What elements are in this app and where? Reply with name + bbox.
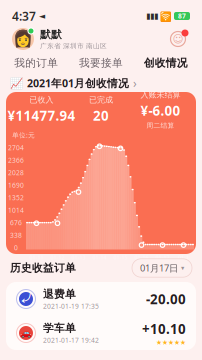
staticText: 周二结算 bbox=[146, 121, 174, 130]
staticText: 338 bbox=[10, 231, 22, 240]
staticText: 已收入 bbox=[29, 95, 53, 105]
button[interactable]: 📈 bbox=[0, 74, 202, 92]
staticText: ▾ bbox=[181, 264, 184, 272]
staticText: 学车单 bbox=[43, 321, 76, 335]
staticText: -20.00 bbox=[146, 290, 186, 308]
staticText: 2021年01月创收情况 bbox=[27, 76, 129, 90]
staticText: 📈 bbox=[10, 77, 23, 89]
button[interactable]: 🚗 bbox=[6, 316, 196, 350]
button[interactable]: 创收情况 bbox=[133, 52, 198, 74]
button[interactable]: 01月17日 bbox=[132, 259, 192, 277]
staticText: 2021-01-17 19:42 bbox=[43, 336, 99, 344]
staticText: › bbox=[133, 75, 137, 91]
staticText: 🛜 bbox=[158, 10, 174, 22]
button[interactable]: Messages bbox=[166, 27, 190, 51]
button[interactable]: 我的订单 bbox=[4, 52, 69, 74]
staticText: 🚗 bbox=[20, 328, 32, 338]
staticText: ⤶ bbox=[20, 294, 31, 304]
staticText: ▮▮▮ bbox=[146, 11, 158, 21]
staticText: 1014 bbox=[8, 206, 24, 215]
staticText: ◄ bbox=[36, 11, 45, 21]
staticText: 默默 bbox=[40, 28, 62, 41]
staticText: +10.10 bbox=[142, 320, 186, 338]
staticText: 0 bbox=[14, 243, 18, 252]
staticText: ¥-6.00 bbox=[140, 102, 180, 119]
staticText: 2366 bbox=[8, 156, 24, 165]
staticText: 已完成 bbox=[89, 95, 113, 105]
staticText: 2704 bbox=[8, 143, 24, 152]
staticText: 退费单 bbox=[43, 287, 76, 301]
button[interactable]: 我要接单 bbox=[69, 52, 133, 74]
staticText: 1352 bbox=[8, 193, 24, 202]
button[interactable]: ⤶ bbox=[6, 282, 196, 316]
staticText: 01-1 bbox=[178, 254, 189, 261]
staticText: 👩 bbox=[13, 30, 33, 48]
staticText: 676 bbox=[10, 218, 22, 227]
staticText: 历史收益订单 bbox=[10, 261, 76, 274]
staticText: ¥11477.94 bbox=[7, 107, 75, 124]
staticText: 2028 bbox=[8, 168, 24, 177]
staticText: ☺ bbox=[172, 33, 183, 45]
staticText: 单位:元 bbox=[12, 131, 35, 139]
staticText: 4:37 bbox=[12, 8, 36, 24]
staticText: 20 bbox=[93, 107, 109, 124]
staticText: 01-17 bbox=[155, 254, 169, 261]
staticText: 2021-01-19 17:35 bbox=[43, 302, 99, 310]
staticText: ★★★★★ bbox=[156, 339, 186, 346]
staticText: 入账未结算 bbox=[140, 90, 180, 100]
staticText: 01-16 bbox=[134, 254, 148, 261]
staticText: 我要接单 bbox=[79, 56, 123, 69]
staticText: 01月17日 bbox=[140, 262, 178, 274]
staticText: 创收情况 bbox=[144, 56, 188, 69]
staticText: 87 bbox=[178, 12, 186, 20]
staticText: 我的订单 bbox=[14, 56, 58, 69]
staticText: 1690 bbox=[8, 181, 24, 190]
staticText: 广东省 深圳市 南山区 bbox=[40, 42, 107, 50]
